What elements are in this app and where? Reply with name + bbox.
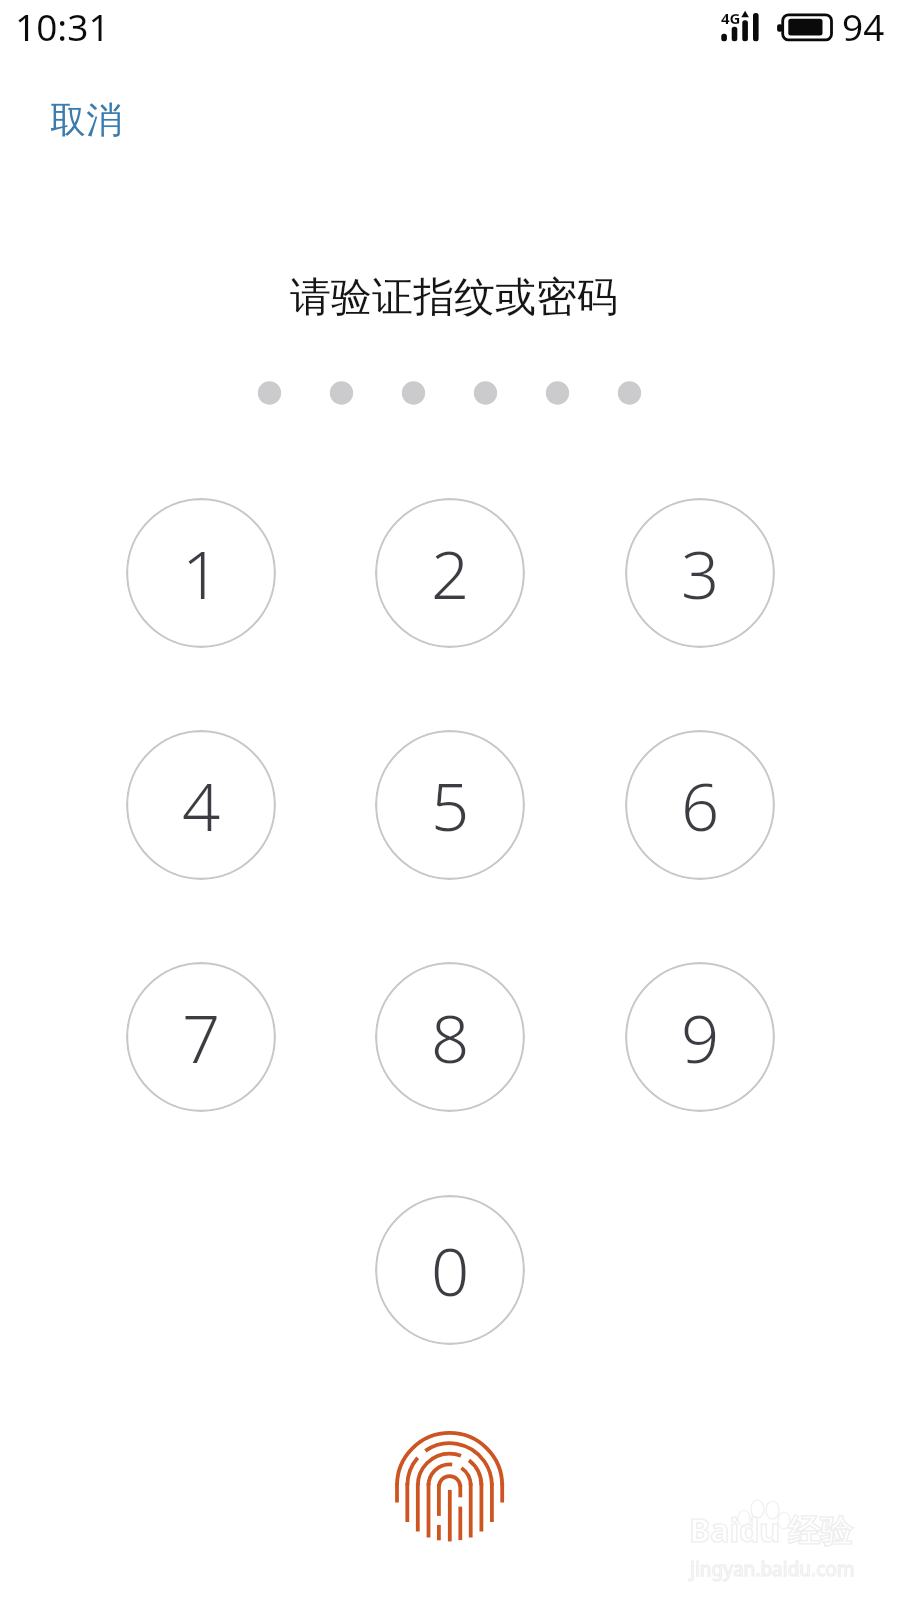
staticText: 4G: [721, 8, 741, 28]
button[interactable]: 3: [625, 498, 775, 648]
button[interactable]: 9: [625, 962, 775, 1112]
staticText: 取消: [50, 97, 122, 142]
staticText: Baidu 经验: [689, 1508, 853, 1552]
staticText: jingyan.baidu.com: [690, 1556, 855, 1582]
button[interactable]: 取消: [40, 91, 132, 148]
staticText: 2: [431, 527, 470, 618]
staticText: 8: [431, 991, 470, 1082]
button[interactable]: 6: [625, 730, 775, 880]
button[interactable]: 5: [375, 730, 525, 880]
button[interactable]: 7: [126, 962, 276, 1112]
staticText: 94: [842, 1, 885, 51]
staticText: 1: [182, 527, 221, 618]
staticText: 4: [182, 759, 221, 850]
staticText: 请验证指纹或密码: [290, 272, 618, 324]
staticText: 7: [182, 991, 221, 1082]
button[interactable]: 0: [375, 1195, 525, 1345]
staticText: 3: [681, 527, 720, 618]
staticText: 10:31: [15, 1, 110, 51]
staticText: 0: [431, 1224, 470, 1315]
staticText: 9: [681, 991, 720, 1082]
button[interactable]: Fingerprint: [393, 1429, 507, 1543]
button[interactable]: 4: [126, 730, 276, 880]
button[interactable]: 1: [126, 498, 276, 648]
button[interactable]: 8: [375, 962, 525, 1112]
staticText: 5: [431, 759, 470, 850]
staticText: 6: [681, 759, 720, 850]
button[interactable]: 2: [375, 498, 525, 648]
